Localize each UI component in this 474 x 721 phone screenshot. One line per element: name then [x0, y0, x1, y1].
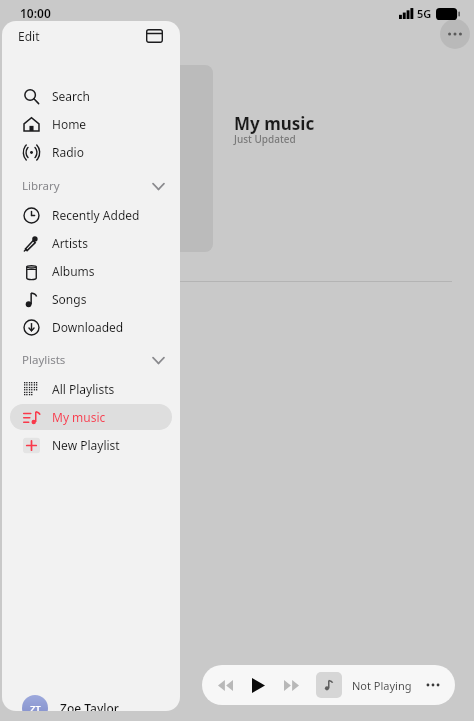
button[interactable]: Albums [10, 258, 172, 284]
staticText: Search [52, 88, 90, 104]
button[interactable]: Library [2, 175, 180, 197]
staticText: Recently Added [52, 207, 140, 223]
button[interactable]: Artists [10, 230, 172, 256]
staticText: Downloaded [52, 319, 124, 335]
button[interactable]: Home [10, 111, 172, 137]
staticText: New Playlist [52, 437, 120, 453]
button[interactable]: Playlists [2, 349, 180, 371]
staticText: Songs [52, 291, 87, 307]
button[interactable]: Play [244, 671, 272, 699]
button[interactable]: Recently Added [10, 202, 172, 228]
button[interactable]: Songs [10, 286, 172, 312]
staticText: Home [52, 116, 87, 132]
button[interactable]: Toggle sidebar [142, 24, 166, 48]
staticText: 10:00 [20, 5, 51, 21]
button[interactable]: Radio [10, 139, 172, 165]
button[interactable]: Fast forward [278, 672, 304, 698]
staticText: ZT [30, 702, 41, 711]
staticText: Artists [52, 235, 88, 251]
staticText: My music [52, 409, 106, 425]
button[interactable]: Downloaded [10, 314, 172, 340]
button[interactable]: Edit [16, 25, 42, 47]
staticText: Zoe Taylor [60, 700, 119, 711]
staticText: Albums [52, 263, 95, 279]
staticText: Playlists [22, 352, 66, 368]
staticText: My music [234, 112, 315, 135]
staticText: Just Updated [234, 132, 296, 146]
button[interactable]: More options [440, 19, 470, 49]
button[interactable]: Search [10, 83, 172, 109]
staticText: Radio [52, 144, 84, 160]
staticText: All Playlists [52, 381, 115, 397]
button[interactable]: ZT [2, 691, 180, 711]
button[interactable]: More [421, 673, 445, 697]
staticText: 5G [417, 6, 432, 21]
staticText: Edit [18, 28, 40, 44]
button[interactable]: New Playlist [10, 432, 172, 458]
button[interactable]: My music [10, 404, 172, 430]
button[interactable]: All Playlists [10, 376, 172, 402]
staticText: Not Playing [352, 678, 412, 693]
button[interactable]: Rewind [212, 672, 238, 698]
staticText: Library [22, 178, 60, 194]
